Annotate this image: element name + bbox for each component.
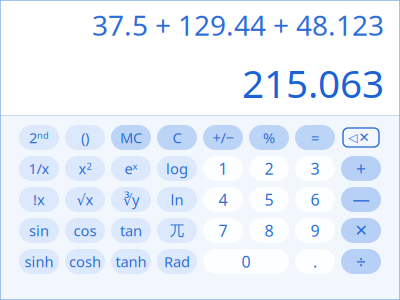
button[interactable]: 6 <box>295 187 335 212</box>
button[interactable]: . <box>295 249 335 274</box>
button[interactable]: 9 <box>295 218 335 243</box>
staticText: x <box>132 160 137 172</box>
staticText: 8 <box>264 220 273 241</box>
staticText: + <box>356 157 366 180</box>
staticText: e <box>124 159 132 178</box>
staticText: 5 <box>264 189 273 210</box>
button[interactable]: C <box>157 125 197 150</box>
staticText: sinh <box>24 252 53 271</box>
staticText: ln <box>170 190 183 209</box>
button[interactable]: log <box>157 156 197 181</box>
staticText: sin <box>29 221 49 240</box>
button[interactable]: 4 <box>203 187 243 212</box>
button[interactable]: () <box>65 125 105 150</box>
staticText: Rad <box>164 252 190 271</box>
staticText: nd <box>37 129 49 141</box>
staticText: 37.5 + 129.44 + 48.123 <box>92 6 384 43</box>
button[interactable]: ÷ <box>341 249 381 274</box>
staticText: 3 <box>310 158 319 179</box>
staticText: C <box>172 128 181 147</box>
staticText: . <box>313 251 317 272</box>
staticText: = <box>311 128 319 147</box>
staticText: +/− <box>212 128 233 147</box>
button[interactable]: cos <box>65 218 105 243</box>
staticText: cosh <box>69 252 101 271</box>
button[interactable]: +/− <box>203 125 243 150</box>
button[interactable]: Delete <box>341 125 381 150</box>
button[interactable]: sinh <box>19 249 59 274</box>
button[interactable]: tan <box>111 218 151 243</box>
staticText: 7 <box>218 220 227 241</box>
staticText: tan <box>120 221 142 240</box>
staticText: 2 <box>86 160 91 172</box>
button[interactable]: 1/x <box>19 156 59 181</box>
button[interactable]: 7 <box>203 218 243 243</box>
button[interactable]: sin <box>19 218 59 243</box>
staticText: ✕ <box>358 130 369 145</box>
button[interactable]: 1 <box>203 156 243 181</box>
button[interactable]: x <box>65 156 105 181</box>
button[interactable]: — <box>341 187 381 212</box>
button[interactable]: 8 <box>249 218 289 243</box>
staticText: % <box>263 128 275 147</box>
staticText: () <box>81 128 89 147</box>
button[interactable]: MC <box>111 125 151 150</box>
button[interactable]: 兀 <box>157 218 197 243</box>
staticText: 0 <box>241 251 250 272</box>
button[interactable]: % <box>249 125 289 150</box>
staticText: !x <box>33 190 45 209</box>
staticText: 兀 <box>169 221 184 239</box>
staticText: — <box>352 188 369 211</box>
button[interactable]: 2 <box>19 125 59 150</box>
staticText: 1 <box>218 158 227 179</box>
button[interactable]: e <box>111 156 151 181</box>
staticText: MC <box>120 128 142 147</box>
button[interactable]: 3 <box>295 156 335 181</box>
staticText: x <box>78 159 86 178</box>
staticText: 9 <box>310 220 319 241</box>
button[interactable]: 2 <box>249 156 289 181</box>
button[interactable]: Rad <box>157 249 197 274</box>
button[interactable]: !x <box>19 187 59 212</box>
staticText: ∛y <box>123 190 139 209</box>
button[interactable]: = <box>295 125 335 150</box>
button[interactable]: ∛y <box>111 187 151 212</box>
staticText: 2 <box>29 128 37 147</box>
button[interactable]: 5 <box>249 187 289 212</box>
staticText: 1/x <box>28 159 49 178</box>
button[interactable]: √x <box>65 187 105 212</box>
button[interactable]: cosh <box>65 249 105 274</box>
staticText: cos <box>73 221 96 240</box>
staticText: 215.063 <box>242 57 384 109</box>
staticText: ◁ <box>348 131 357 144</box>
button[interactable]: ln <box>157 187 197 212</box>
button[interactable]: tanh <box>111 249 151 274</box>
staticText: log <box>166 159 188 178</box>
staticText: 4 <box>218 189 227 210</box>
button[interactable]: + <box>341 156 381 181</box>
staticText: 2 <box>264 158 273 179</box>
staticText: ✕ <box>354 221 367 240</box>
button[interactable]: 0 <box>203 249 289 274</box>
button[interactable]: ✕ <box>341 218 381 243</box>
staticText: ÷ <box>356 250 366 273</box>
staticText: √x <box>76 190 93 209</box>
staticText: tanh <box>115 252 146 271</box>
staticText: 6 <box>310 189 319 210</box>
